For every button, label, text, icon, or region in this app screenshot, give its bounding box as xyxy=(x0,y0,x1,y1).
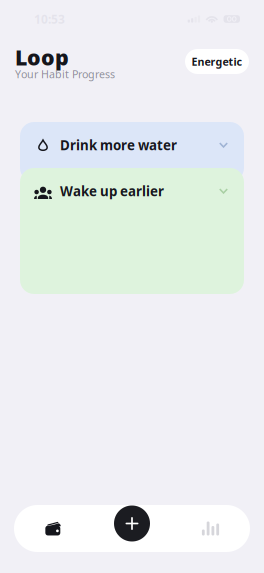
button[interactable]: Energetic xyxy=(185,49,249,74)
button[interactable]: Add habit xyxy=(114,505,150,541)
button[interactable]: Wake up earlier xyxy=(20,168,244,294)
staticText: Loop xyxy=(15,43,69,71)
staticText: Wake up earlier xyxy=(60,182,164,200)
staticText: Drink more water xyxy=(60,136,177,154)
button[interactable]: Wallet xyxy=(14,505,93,552)
button[interactable]: Statistics xyxy=(171,505,250,552)
staticText: 10:53 xyxy=(34,11,65,27)
button[interactable]: Drink more water xyxy=(20,122,244,182)
staticText: Your Habit Progress xyxy=(15,67,115,81)
staticText: Energetic xyxy=(191,54,242,69)
